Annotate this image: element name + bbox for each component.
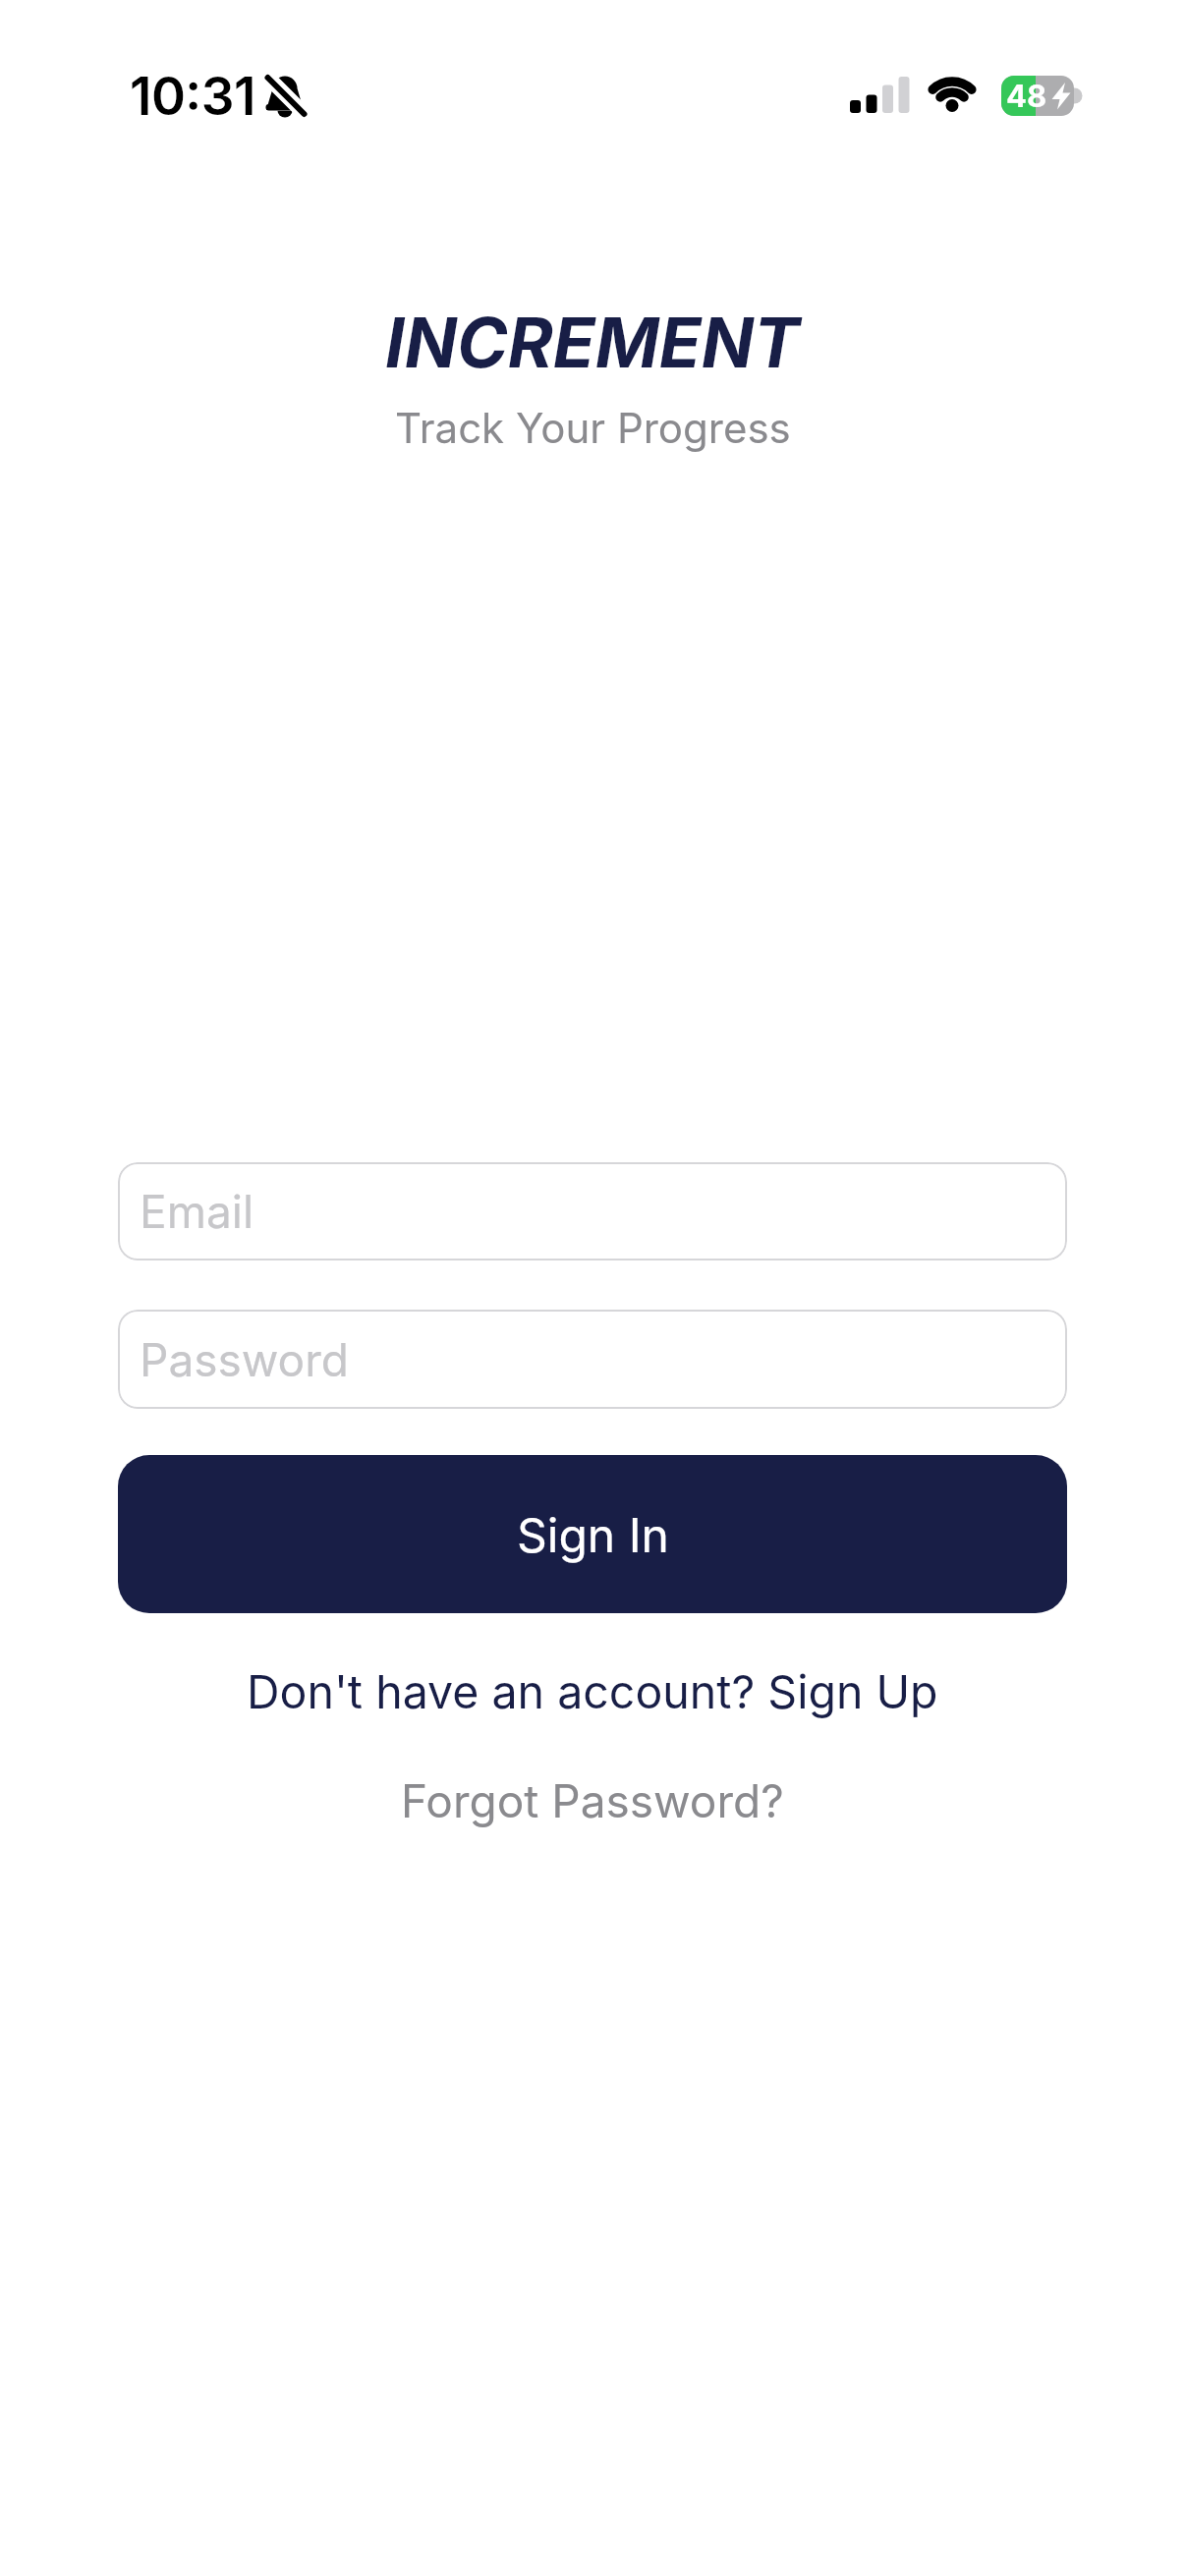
button[interactable]: Don't have an account? Sign Up — [247, 1664, 938, 1719]
staticText: Sign In — [517, 1506, 669, 1563]
staticText: INCREMENT — [385, 301, 800, 384]
button[interactable]: Email — [118, 1162, 1067, 1260]
staticText: 48 — [1006, 78, 1047, 115]
staticText: Forgot Password? — [401, 1773, 784, 1828]
staticText: 10:31 — [130, 65, 255, 128]
staticText: Password — [140, 1332, 349, 1387]
button[interactable]: Sign In — [118, 1455, 1067, 1613]
staticText: Track Your Progress — [395, 403, 791, 453]
staticText: Don't have an account? Sign Up — [247, 1664, 938, 1719]
staticText: Email — [140, 1184, 254, 1239]
button[interactable]: Password — [118, 1310, 1067, 1409]
button[interactable]: Forgot Password? — [401, 1773, 784, 1828]
